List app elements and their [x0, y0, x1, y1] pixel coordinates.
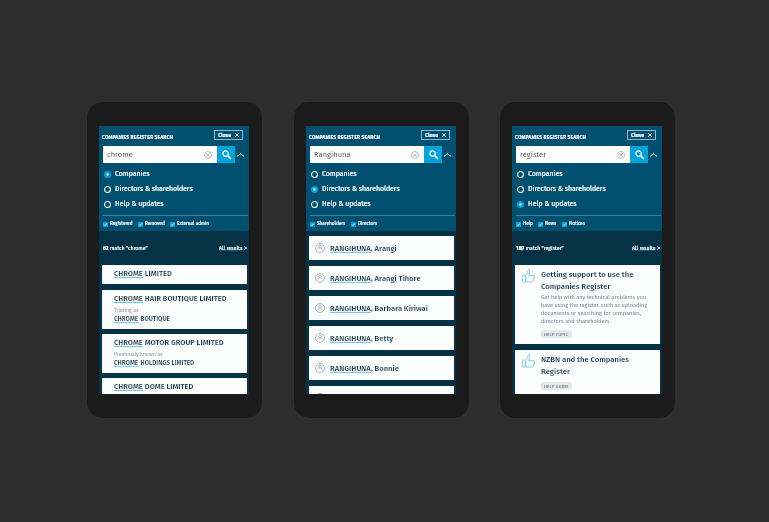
staticText: Get help with any technical problems you…	[541, 294, 653, 324]
staticText: Help & updates	[528, 200, 577, 208]
button[interactable]: Close	[627, 130, 656, 140]
button[interactable]: Directors & shareholders	[104, 182, 249, 196]
staticText: RANGIHUNA	[330, 304, 371, 313]
button[interactable]: RANGIHUNA	[315, 266, 454, 290]
staticText: , Betty	[371, 334, 394, 343]
staticText: Companies	[115, 170, 150, 178]
staticText: Directors & shareholders	[115, 185, 193, 193]
button[interactable]: Search	[424, 146, 442, 163]
button[interactable]: Close	[214, 130, 243, 140]
staticText: Help	[523, 221, 533, 227]
staticText: Registered	[110, 221, 133, 227]
button[interactable]: RANGIHUNA	[315, 296, 454, 320]
button[interactable]: Collapse search	[648, 146, 658, 163]
staticText: COMPANIES REGISTER SEARCH	[102, 134, 174, 140]
button[interactable]: Companies	[104, 167, 249, 181]
button[interactable]: HELP GUIDE	[544, 382, 569, 390]
staticText: RANGIHUNA	[330, 244, 371, 253]
button[interactable]: Clear search	[617, 151, 625, 159]
staticText: MOTOR GROUP LIMITED	[143, 338, 224, 347]
staticText: RANGIHUNA	[330, 364, 371, 373]
staticText: All results	[219, 245, 243, 251]
button[interactable]: RANGIHUNA	[315, 356, 454, 380]
button[interactable]: Search	[217, 146, 235, 163]
button[interactable]: Companies	[517, 167, 662, 181]
button[interactable]: All results	[205, 244, 247, 252]
button[interactable]: RANGIHUNA	[315, 326, 454, 350]
staticText: All results	[632, 245, 656, 251]
button[interactable]: Collapse search	[442, 146, 452, 163]
staticText: register	[520, 150, 617, 159]
button[interactable]: News	[538, 221, 557, 227]
staticText: HAIR BOUTIQUE LIMITED	[143, 294, 227, 303]
staticText: DOME LIMITED	[143, 382, 194, 391]
staticText: Companies	[528, 170, 563, 178]
staticText: Close	[631, 132, 645, 138]
staticText: CHROME	[114, 359, 139, 367]
button[interactable]: Notices	[562, 221, 585, 227]
button[interactable]: chrome	[107, 146, 212, 163]
button[interactable]: Directors & shareholders	[517, 182, 662, 196]
button[interactable]: Shareholders	[310, 221, 346, 227]
staticText: chrome	[107, 150, 204, 159]
staticText: Getting support to use the Companies Reg…	[541, 270, 653, 291]
staticText: Removed	[145, 221, 165, 227]
button[interactable]: Help	[516, 221, 533, 227]
staticText: Rangihuna	[314, 150, 411, 159]
button[interactable]: CHROME	[114, 382, 242, 391]
button[interactable]: register	[520, 146, 625, 163]
staticText: HELP GUIDE	[544, 384, 569, 389]
staticText: Trading as	[114, 307, 139, 313]
button[interactable]: Clear search	[411, 151, 419, 159]
button[interactable]: Removed	[138, 221, 165, 227]
button[interactable]: Collapse search	[235, 146, 245, 163]
staticText: Help & updates	[115, 200, 164, 208]
staticText: LIMITED	[143, 269, 172, 278]
staticText: Close	[425, 132, 439, 138]
staticText: 189 match “register”	[516, 245, 564, 251]
staticText: Directors & shareholders	[322, 185, 400, 193]
button[interactable]: Clear search	[204, 151, 212, 159]
button[interactable]: External admin	[170, 221, 210, 227]
staticText: COMPANIES REGISTER SEARCH	[309, 134, 381, 140]
button[interactable]: Help & updates	[104, 197, 249, 211]
button[interactable]: Registered	[103, 221, 133, 227]
staticText: BOUTIQUE	[139, 315, 170, 323]
button[interactable]: Rangihuna	[314, 146, 419, 163]
button[interactable]: Close	[421, 130, 450, 140]
staticText: Shareholders	[317, 221, 346, 227]
staticText: Companies	[322, 170, 357, 178]
button[interactable]: Directors & shareholders	[311, 182, 456, 196]
staticText: CHROME	[114, 338, 143, 347]
staticText: NZBN and the Companies Register	[541, 355, 653, 376]
button[interactable]: All results	[618, 244, 660, 252]
staticText: RANGIHUNA	[330, 334, 371, 343]
button[interactable]: RANGIHUNA	[315, 236, 454, 260]
staticText: HELP TOPIC	[544, 332, 569, 337]
staticText: , Arangi Tihore	[371, 274, 421, 283]
button[interactable]: RANGIHUNA	[315, 386, 454, 394]
button[interactable]: Search	[630, 146, 648, 163]
staticText: Help & updates	[322, 200, 371, 208]
staticText: CHROME	[114, 294, 143, 303]
staticText: RANGIHUNA	[330, 274, 371, 283]
staticText: COMPANIES REGISTER SEARCH	[515, 134, 587, 140]
button[interactable]: CHROME	[114, 269, 242, 278]
staticText: Directors	[358, 221, 378, 227]
staticText: , Bonnie	[371, 364, 399, 373]
button[interactable]: CHROME	[114, 294, 242, 323]
button[interactable]: Companies	[311, 167, 456, 181]
button[interactable]: CHROME	[114, 338, 242, 367]
button[interactable]: Directors	[351, 221, 378, 227]
staticText: , Arangi	[371, 244, 397, 253]
staticText: External admin	[177, 221, 210, 227]
button[interactable]: NZBN and the Companies Register	[522, 355, 653, 390]
button[interactable]: Help & updates	[517, 197, 662, 211]
button[interactable]: HELP TOPIC	[544, 330, 569, 338]
button[interactable]: Help & updates	[311, 197, 456, 211]
staticText: , Barbara Kiriwai	[371, 304, 428, 313]
button[interactable]: Getting support to use the Companies Reg…	[522, 270, 653, 338]
staticText: CHROME	[114, 382, 143, 391]
staticText: News	[545, 221, 557, 227]
staticText: CHROME	[114, 315, 139, 323]
